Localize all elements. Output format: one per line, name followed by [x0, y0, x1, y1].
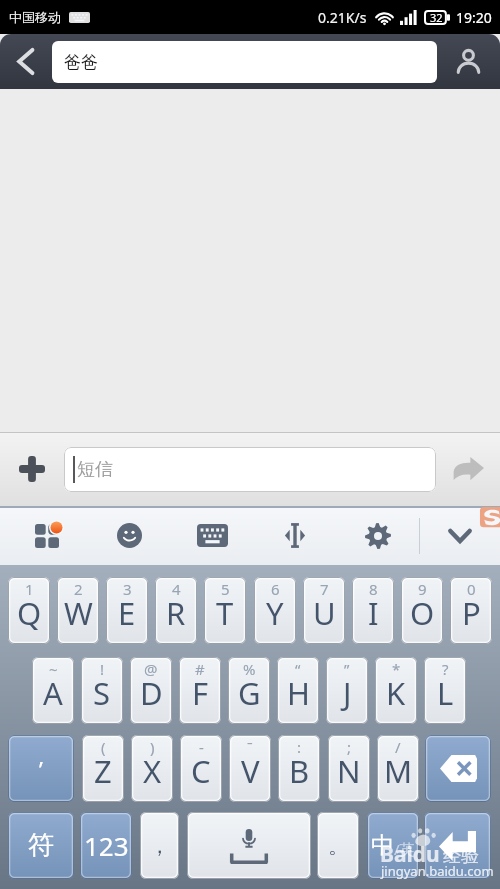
staticText: W: [64, 592, 93, 634]
button[interactable]: ˉ: [229, 735, 271, 802]
button[interactable]: /: [377, 735, 419, 802]
button[interactable]: 6: [254, 577, 296, 644]
staticText: Q: [17, 592, 42, 634]
staticText: *: [392, 659, 401, 679]
button[interactable]: Backspace: [425, 735, 491, 802]
staticText: R: [166, 592, 186, 634]
button[interactable]: Enter: [424, 812, 491, 879]
button[interactable]: #: [179, 657, 221, 724]
button[interactable]: :: [278, 735, 320, 802]
staticText: 123: [84, 828, 129, 863]
staticText: “: [295, 659, 301, 679]
button[interactable]: 4: [155, 577, 197, 644]
staticText: ˉ: [247, 737, 253, 757]
staticText: ”: [344, 659, 350, 679]
staticText: X: [143, 750, 162, 792]
staticText: 8: [369, 579, 378, 599]
button[interactable]: %: [228, 657, 270, 724]
staticText: 3: [123, 579, 132, 599]
button[interactable]: 9: [401, 577, 443, 644]
button[interactable]: Apps: [0, 506, 88, 565]
staticText: Z: [94, 750, 112, 792]
button[interactable]: Back: [0, 34, 52, 89]
button[interactable]: Add attachment: [0, 432, 64, 506]
staticText: @: [144, 659, 158, 679]
staticText: 短信: [77, 458, 113, 481]
button[interactable]: ): [131, 735, 173, 802]
staticText: ;: [347, 737, 352, 757]
button[interactable]: 5: [204, 577, 246, 644]
button[interactable]: Hide keyboard: [420, 506, 500, 565]
staticText: ~: [49, 659, 58, 679]
button[interactable]: @: [130, 657, 172, 724]
button[interactable]: 3: [106, 577, 148, 644]
staticText: V: [241, 750, 260, 792]
button[interactable]: 0: [450, 577, 492, 644]
button[interactable]: Send: [436, 432, 500, 506]
button[interactable]: ?: [424, 657, 466, 724]
staticText: L: [437, 672, 454, 714]
button[interactable]: ;: [328, 735, 370, 802]
staticText: E: [118, 592, 136, 634]
button[interactable]: ”: [326, 657, 368, 724]
button[interactable]: Move cursor: [253, 506, 336, 565]
button[interactable]: Contacts: [437, 34, 500, 89]
button[interactable]: *: [375, 657, 417, 724]
button[interactable]: ，: [140, 812, 179, 879]
staticText: I: [368, 592, 379, 634]
staticText: 4: [172, 579, 181, 599]
staticText: N: [337, 750, 361, 792]
staticText: ，: [149, 833, 170, 859]
button[interactable]: 符: [8, 812, 74, 879]
button[interactable]: (: [82, 735, 124, 802]
staticText: (: [101, 737, 106, 757]
staticText: jingyan.baidu.com: [381, 862, 494, 880]
button[interactable]: 2: [57, 577, 99, 644]
staticText: K: [386, 672, 406, 714]
staticText: G: [238, 672, 261, 714]
button[interactable]: Switch Chinese English: [367, 812, 419, 879]
button[interactable]: 1: [8, 577, 50, 644]
staticText: S: [93, 672, 111, 714]
staticText: A: [43, 672, 63, 714]
staticText: D: [140, 672, 163, 714]
button[interactable]: 7: [303, 577, 345, 644]
staticText: 5: [221, 579, 230, 599]
button[interactable]: “: [277, 657, 319, 724]
button[interactable]: 123: [80, 812, 132, 879]
staticText: 经验: [443, 845, 479, 868]
staticText: B: [289, 750, 310, 792]
staticText: Baidu: [380, 840, 440, 869]
button[interactable]: Settings: [336, 506, 419, 565]
button[interactable]: ~: [32, 657, 74, 724]
button[interactable]: 爸爸: [52, 41, 437, 83]
button[interactable]: ’: [8, 735, 74, 802]
staticText: %: [243, 659, 256, 679]
staticText: O: [410, 592, 435, 634]
staticText: 爸爸: [64, 52, 98, 73]
staticText: 。: [328, 833, 349, 859]
staticText: 0.21K/s: [318, 8, 367, 27]
staticText: 7: [320, 579, 329, 599]
button[interactable]: 短信: [64, 447, 436, 492]
button[interactable]: Keyboard layout: [171, 506, 253, 565]
staticText: 中: [371, 831, 394, 860]
button[interactable]: Emoji: [88, 506, 171, 565]
staticText: /英: [394, 839, 415, 859]
staticText: 2: [74, 579, 83, 599]
staticText: U: [313, 592, 336, 634]
staticText: 9: [418, 579, 427, 599]
staticText: :: [297, 737, 302, 757]
staticText: 1: [25, 579, 34, 599]
button[interactable]: 。: [317, 812, 359, 879]
staticText: #: [195, 659, 205, 679]
staticText: Y: [266, 592, 284, 634]
button[interactable]: Space or voice input: [187, 812, 311, 879]
staticText: ): [150, 737, 155, 757]
button[interactable]: !: [81, 657, 123, 724]
button[interactable]: -: [180, 735, 222, 802]
staticText: J: [343, 672, 352, 714]
staticText: 32: [430, 10, 443, 25]
button[interactable]: 8: [352, 577, 394, 644]
staticText: 6: [271, 579, 280, 599]
